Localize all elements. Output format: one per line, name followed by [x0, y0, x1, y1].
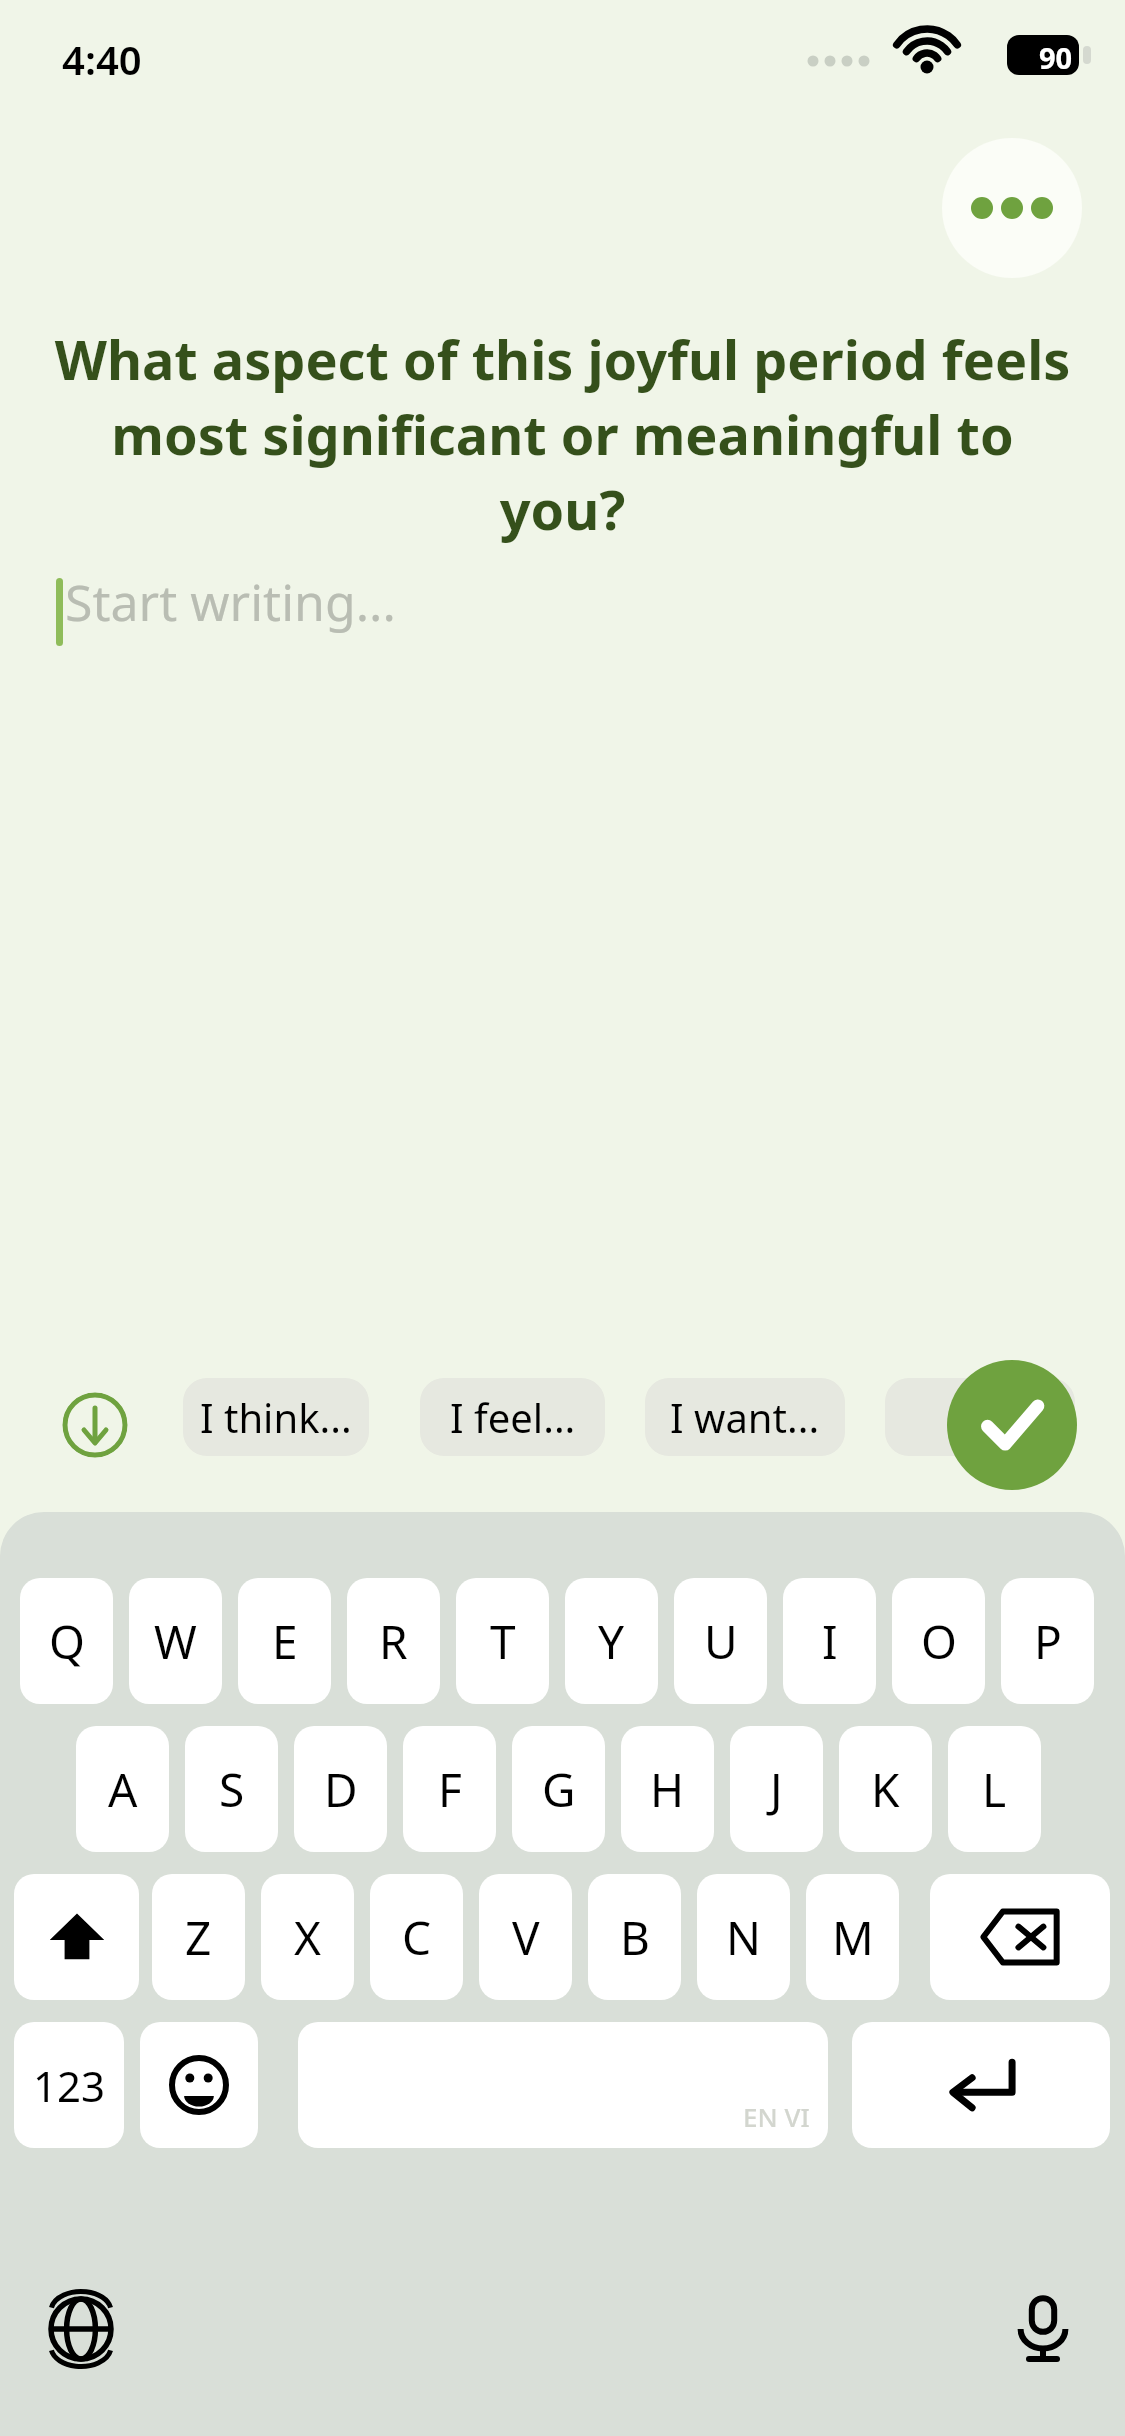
staticText: C: [402, 1906, 432, 1969]
button[interactable]: Y: [565, 1578, 658, 1704]
staticText: 90: [1039, 38, 1073, 77]
button[interactable]: Start writing...: [56, 568, 1125, 1328]
button[interactable]: P: [1001, 1578, 1094, 1704]
staticText: E: [272, 1610, 298, 1673]
staticText: H: [650, 1758, 685, 1821]
button[interactable]: T: [456, 1578, 549, 1704]
button[interactable]: N: [697, 1874, 790, 2000]
button[interactable]: B: [588, 1874, 681, 2000]
staticText: A: [108, 1758, 138, 1821]
button[interactable]: E: [238, 1578, 331, 1704]
button[interactable]: W: [129, 1578, 222, 1704]
button[interactable]: Voice input: [990, 2276, 1096, 2382]
staticText: K: [871, 1758, 900, 1821]
button[interactable]: A: [76, 1726, 169, 1852]
button[interactable]: J: [730, 1726, 823, 1852]
button[interactable]: Enter: [852, 2022, 1110, 2148]
button[interactable]: More options: [942, 138, 1082, 278]
staticText: B: [620, 1906, 650, 1969]
button[interactable]: I think...: [183, 1378, 369, 1456]
staticText: I feel...: [450, 1390, 576, 1444]
staticText: J: [770, 1758, 783, 1821]
staticText: P: [1034, 1610, 1062, 1673]
button[interactable]: V: [479, 1874, 572, 2000]
button[interactable]: L: [948, 1726, 1041, 1852]
button[interactable]: I want...: [645, 1378, 845, 1456]
staticText: What aspect of this joyful period feels …: [54, 322, 1071, 546]
staticText: X: [294, 1906, 321, 1969]
button[interactable]: H: [621, 1726, 714, 1852]
staticText: 4:40: [62, 32, 142, 86]
button[interactable]: 123: [14, 2022, 124, 2148]
button[interactable]: D: [294, 1726, 387, 1852]
staticText: F: [438, 1758, 462, 1821]
staticText: I want...: [670, 1390, 820, 1444]
button[interactable]: Q: [20, 1578, 113, 1704]
staticText: Start writing...: [65, 568, 396, 636]
button[interactable]: K: [839, 1726, 932, 1852]
staticText: D: [324, 1758, 358, 1821]
staticText: L: [982, 1758, 1007, 1821]
button[interactable]: R: [347, 1578, 440, 1704]
staticText: EN VI: [743, 2099, 810, 2134]
staticText: Q: [49, 1610, 85, 1673]
staticText: T: [490, 1610, 516, 1673]
staticText: I n: [956, 1390, 1005, 1444]
button[interactable]: Space: [298, 2022, 828, 2148]
button[interactable]: Change language: [28, 2276, 134, 2382]
button[interactable]: O: [892, 1578, 985, 1704]
staticText: N: [726, 1906, 761, 1969]
button[interactable]: M: [806, 1874, 899, 2000]
button[interactable]: Backspace: [930, 1874, 1110, 2000]
staticText: M: [832, 1906, 874, 1969]
staticText: O: [921, 1610, 957, 1673]
staticText: W: [154, 1610, 197, 1673]
button[interactable]: Z: [152, 1874, 245, 2000]
staticText: Y: [598, 1610, 625, 1673]
button[interactable]: G: [512, 1726, 605, 1852]
staticText: U: [704, 1610, 738, 1673]
button[interactable]: S: [185, 1726, 278, 1852]
staticText: R: [379, 1610, 408, 1673]
button[interactable]: I n: [885, 1378, 1075, 1456]
button[interactable]: F: [403, 1726, 496, 1852]
staticText: S: [219, 1758, 245, 1821]
staticText: Z: [185, 1906, 212, 1969]
button[interactable]: C: [370, 1874, 463, 2000]
button[interactable]: I feel...: [420, 1378, 605, 1456]
staticText: I: [822, 1610, 838, 1673]
button[interactable]: Confirm: [947, 1360, 1077, 1490]
button[interactable]: I: [783, 1578, 876, 1704]
staticText: G: [542, 1758, 576, 1821]
button[interactable]: X: [261, 1874, 354, 2000]
button[interactable]: U: [674, 1578, 767, 1704]
button[interactable]: Emoji: [140, 2022, 258, 2148]
button[interactable]: Scroll down: [62, 1392, 128, 1458]
staticText: 123: [33, 2057, 106, 2114]
staticText: V: [512, 1906, 540, 1969]
staticText: I think...: [200, 1390, 352, 1444]
button[interactable]: Shift: [14, 1874, 139, 2000]
